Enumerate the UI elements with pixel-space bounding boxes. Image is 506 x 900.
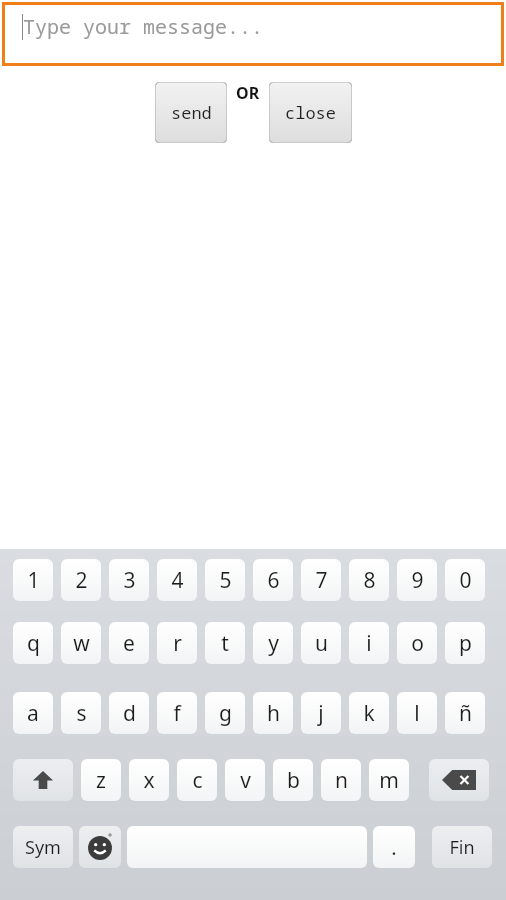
button[interactable]: n <box>321 759 361 801</box>
button[interactable]: 9 <box>397 559 437 601</box>
staticText: i <box>366 629 372 658</box>
staticText: ñ <box>459 699 472 728</box>
staticText: 7 <box>315 566 328 595</box>
button[interactable]: ñ <box>445 692 485 734</box>
staticText: 0 <box>459 566 472 595</box>
button[interactable]: c <box>177 759 217 801</box>
button[interactable]: k <box>349 692 389 734</box>
button[interactable]: 4 <box>157 559 197 601</box>
staticText: 4 <box>171 566 184 595</box>
button[interactable]: o <box>397 622 437 664</box>
button[interactable]: i <box>349 622 389 664</box>
staticText: b <box>287 766 300 795</box>
button[interactable]: 0 <box>445 559 485 601</box>
staticText: 5 <box>219 566 232 595</box>
staticText: o <box>411 629 424 658</box>
button[interactable]: 5 <box>205 559 245 601</box>
button[interactable]: p <box>445 622 485 664</box>
button[interactable]: e <box>109 622 149 664</box>
button[interactable]: close <box>269 82 352 143</box>
staticText: 9 <box>411 566 424 595</box>
staticText: w <box>73 629 90 658</box>
button[interactable]: t <box>205 622 245 664</box>
staticText: g <box>219 699 232 728</box>
staticText: Sym <box>25 835 61 860</box>
staticText: h <box>267 699 280 728</box>
button[interactable]: j <box>301 692 341 734</box>
button[interactable]: 7 <box>301 559 341 601</box>
staticText: 1 <box>27 566 40 595</box>
staticText: v <box>240 766 251 795</box>
button[interactable]: y <box>253 622 293 664</box>
button[interactable]: v <box>225 759 265 801</box>
staticText: u <box>315 629 328 658</box>
button[interactable]: Backspace <box>429 759 489 801</box>
button[interactable]: x <box>129 759 169 801</box>
button[interactable]: w <box>61 622 101 664</box>
button[interactable]: a <box>13 692 53 734</box>
button[interactable]: d <box>109 692 149 734</box>
staticText: d <box>123 699 136 728</box>
staticText: Type your message... <box>23 13 263 40</box>
button[interactable]: f <box>157 692 197 734</box>
staticText: x <box>143 766 155 795</box>
staticText: l <box>414 699 420 728</box>
button[interactable] <box>127 826 367 868</box>
staticText: send <box>171 101 212 124</box>
button[interactable]: u <box>301 622 341 664</box>
button[interactable]: b <box>273 759 313 801</box>
staticText: q <box>27 629 40 658</box>
staticText: z <box>96 766 106 795</box>
button[interactable]: z <box>81 759 121 801</box>
staticText: close <box>285 101 336 124</box>
button[interactable]: g <box>205 692 245 734</box>
button[interactable]: Fin <box>432 826 492 868</box>
button[interactable]: 2 <box>61 559 101 601</box>
staticText: 8 <box>363 566 376 595</box>
staticText: f <box>173 699 181 728</box>
staticText: p <box>459 629 472 658</box>
staticText: Fin <box>449 835 475 860</box>
button[interactable]: 6 <box>253 559 293 601</box>
staticText: k <box>363 699 375 728</box>
button[interactable]: l <box>397 692 437 734</box>
button[interactable]: s <box>61 692 101 734</box>
staticText: s <box>76 699 87 728</box>
staticText: j <box>318 699 324 728</box>
button[interactable]: send <box>155 82 227 143</box>
button[interactable]: q <box>13 622 53 664</box>
button[interactable]: Shift <box>13 759 73 801</box>
staticText: OR <box>236 82 260 104</box>
staticText: y <box>268 629 279 658</box>
staticText: . <box>391 834 397 861</box>
button[interactable]: r <box>157 622 197 664</box>
button[interactable]: 3 <box>109 559 149 601</box>
button[interactable]: . <box>373 826 415 868</box>
staticText: t <box>221 629 229 658</box>
staticText: r <box>173 629 182 658</box>
staticText: c <box>192 766 203 795</box>
button[interactable]: m <box>369 759 409 801</box>
staticText: e <box>123 629 135 658</box>
button[interactable]: Type your message... <box>5 5 501 63</box>
button[interactable]: h <box>253 692 293 734</box>
button[interactable]: 8 <box>349 559 389 601</box>
staticText: 2 <box>75 566 88 595</box>
staticText: m <box>379 766 399 795</box>
button[interactable]: Emoji <box>79 826 121 868</box>
staticText: 6 <box>267 566 280 595</box>
button[interactable]: Sym <box>13 826 73 868</box>
staticText: a <box>27 699 39 728</box>
staticText: 3 <box>123 566 136 595</box>
staticText: n <box>335 766 348 795</box>
button[interactable]: 1 <box>13 559 53 601</box>
